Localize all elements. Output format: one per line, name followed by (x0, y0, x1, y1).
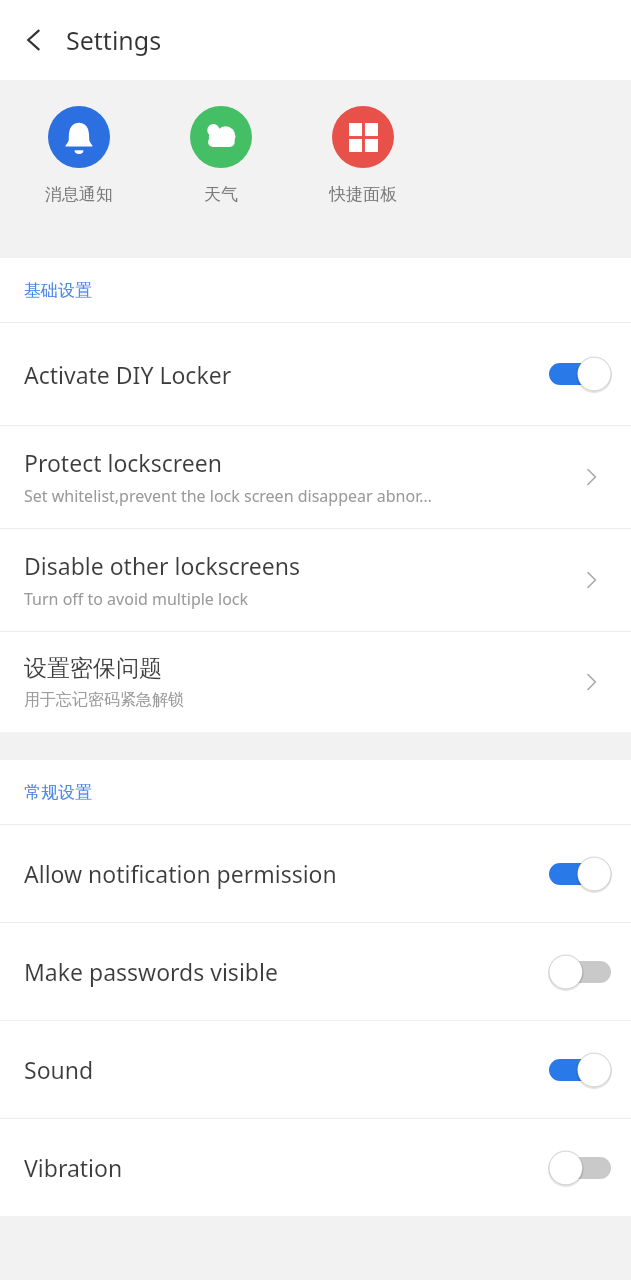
button[interactable]: Toggle on (549, 353, 611, 395)
button[interactable]: Toggle off (549, 951, 611, 993)
button[interactable]: Allow notification permission (0, 825, 631, 922)
button[interactable]: Toggle on (549, 1049, 611, 1091)
staticText: Protect lockscreen (24, 447, 222, 478)
staticText: Disable other lockscreens (24, 550, 301, 581)
staticText: Settings (66, 23, 162, 57)
staticText: Sound (24, 1054, 94, 1085)
button[interactable]: Back (8, 14, 60, 66)
staticText: Activate DIY Locker (24, 359, 232, 390)
staticText: Make passwords visible (24, 956, 278, 987)
staticText: 天气 (204, 184, 238, 205)
button[interactable]: 消息通知 (8, 106, 150, 205)
staticText: 快捷面板 (329, 184, 397, 205)
button[interactable]: Toggle on (549, 853, 611, 895)
button[interactable]: Activate DIY Locker (0, 323, 631, 425)
button[interactable]: Sound (0, 1021, 631, 1118)
staticText: 基础设置 (24, 280, 92, 301)
button[interactable]: Toggle off (549, 1147, 611, 1189)
staticText: 用于忘记密码紧急解锁 (24, 690, 184, 710)
button[interactable]: 快捷面板 (292, 106, 434, 205)
staticText: 消息通知 (45, 184, 113, 205)
staticText: Vibration (24, 1152, 123, 1183)
button[interactable]: Protect lockscreen (0, 426, 631, 528)
button[interactable]: Make passwords visible (0, 923, 631, 1020)
staticText: Set whitelist,prevent the lock screen di… (24, 485, 432, 507)
staticText: Turn off to avoid multiple lock (24, 588, 249, 610)
button[interactable]: Disable other lockscreens (0, 529, 631, 631)
button[interactable]: Vibration (0, 1119, 631, 1216)
staticText: 常规设置 (24, 782, 92, 803)
button[interactable]: 天气 (150, 106, 292, 205)
staticText: Allow notification permission (24, 858, 337, 889)
button[interactable]: 设置密保问题 (0, 632, 631, 732)
staticText: 设置密保问题 (24, 654, 162, 683)
